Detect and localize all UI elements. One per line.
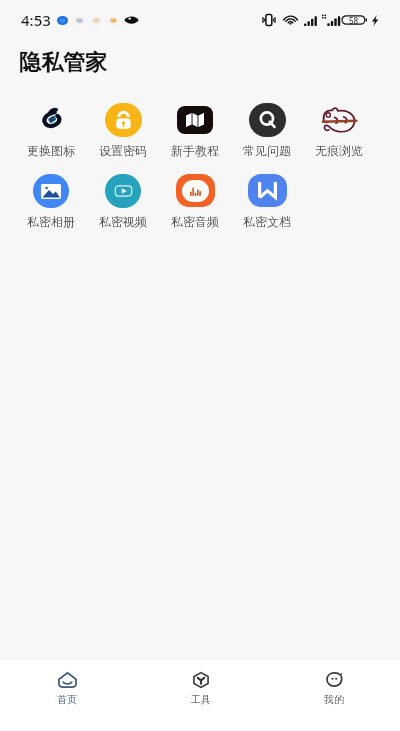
button[interactable]: 我的 — [267, 660, 400, 731]
staticText: 新手教程 — [171, 143, 219, 158]
button[interactable]: 更换图标 — [15, 102, 87, 158]
staticText: 私密视频 — [99, 214, 147, 229]
button[interactable]: 无痕浏览 — [303, 102, 375, 158]
button[interactable]: 私密视频 — [87, 173, 159, 229]
staticText: 更换图标 — [27, 143, 75, 158]
button[interactable]: 新手教程 — [159, 102, 231, 158]
button[interactable]: 设置密码 — [87, 102, 159, 158]
staticText: 私密文档 — [243, 214, 291, 229]
staticText: 首页 — [57, 693, 77, 706]
staticText: 58 — [349, 15, 359, 26]
button[interactable]: 常见问题 — [231, 102, 303, 158]
staticText: 私密音频 — [171, 214, 219, 229]
button[interactable]: 私密相册 — [15, 173, 87, 229]
staticText: 工具 — [191, 693, 211, 706]
staticText: 常见问题 — [243, 143, 291, 158]
button[interactable]: 首页 — [0, 660, 134, 731]
button[interactable]: 私密文档 — [231, 173, 303, 229]
staticText: 私密相册 — [27, 214, 75, 229]
button[interactable]: 私密音频 — [159, 173, 231, 229]
button[interactable]: 工具 — [134, 660, 267, 731]
staticText: 无痕浏览 — [315, 143, 363, 158]
staticText: 4:53 — [21, 10, 51, 30]
staticText: 隐私管家 — [19, 49, 107, 77]
staticText: 设置密码 — [99, 143, 147, 158]
staticText: 我的 — [324, 693, 344, 706]
